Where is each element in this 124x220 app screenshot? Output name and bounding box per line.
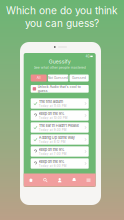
staticText: Keep on the 9%: [39, 147, 65, 152]
staticText: Today at 9:30 PM: [39, 128, 67, 132]
button[interactable]: Keep on the 9%: [31, 110, 89, 121]
staticText: Today at 10:00 PM: [39, 116, 68, 120]
button[interactable]: Keep on the 9%: [31, 158, 89, 169]
staticText: Today at 7:00 PM: [39, 152, 67, 156]
staticText: The Earth Hadn't Please: [39, 123, 79, 128]
staticText: Which one do you think: [6, 4, 118, 17]
button[interactable]: Home: [24, 173, 38, 187]
button[interactable]: The Earth Hadn't Please: [31, 122, 89, 133]
staticText: Unlock Audio that's cool to guess: [38, 85, 81, 93]
button[interactable]: Keep on the 9%: [31, 146, 89, 157]
staticText: Adding Up Some way: [39, 135, 75, 140]
staticText: 4G: [86, 55, 90, 58]
button[interactable]: Unlock Audio that's cool to guess: [31, 85, 89, 93]
staticText: Today at 8:12 PM: [39, 140, 66, 144]
staticText: See what other people mastered: [34, 65, 86, 69]
button[interactable]: Guessed: [69, 74, 89, 81]
staticText: Not Guessed: [48, 76, 68, 80]
button[interactable]: More: [81, 173, 96, 187]
button[interactable]: Search: [38, 173, 52, 187]
staticText: Keep on the 9%: [39, 159, 65, 164]
staticText: Today at 6:00 PM: [39, 164, 67, 168]
button[interactable]: Adding Up Some way: [31, 134, 89, 145]
staticText: All: [37, 76, 41, 80]
staticText: Guessify: [49, 58, 71, 65]
staticText: Guessed: [72, 76, 86, 80]
button[interactable]: The first album: [31, 98, 89, 109]
staticText: you can guess?: [25, 17, 99, 30]
button[interactable]: Not Guessed: [48, 74, 68, 81]
staticText: The first album: [39, 99, 63, 104]
staticText: Keep on the 9%: [39, 111, 65, 116]
staticText: Today at 11:45 PM: [39, 104, 67, 108]
button[interactable]: All: [31, 74, 47, 81]
button[interactable]: Profile: [52, 173, 67, 187]
button[interactable]: Alerts: [67, 173, 81, 187]
